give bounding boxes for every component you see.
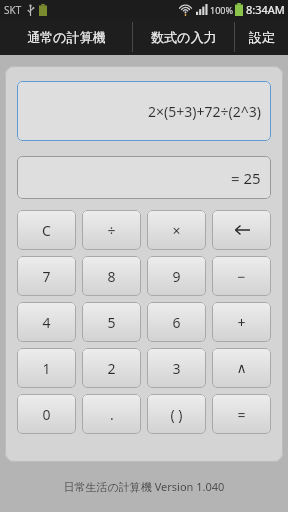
button[interactable]: . [82, 394, 141, 434]
button[interactable]: C [17, 210, 76, 250]
staticText: × [172, 221, 181, 240]
staticText: 2 [107, 359, 116, 378]
button[interactable]: 6 [147, 302, 206, 342]
button[interactable]: − [212, 256, 271, 296]
button[interactable]: 1 [17, 348, 76, 388]
staticText: 7 [42, 267, 51, 286]
button[interactable]: Backspace [212, 210, 271, 250]
button[interactable]: 0 [17, 394, 76, 434]
staticText: = 25 [231, 168, 261, 188]
button[interactable]: 9 [147, 256, 206, 296]
button[interactable]: 設定 [235, 19, 288, 55]
button[interactable]: = 25 [17, 156, 271, 199]
staticText: 2×(5+3)+72÷(2^3) [148, 102, 261, 121]
button[interactable]: 7 [17, 256, 76, 296]
button[interactable]: 5 [82, 302, 141, 342]
staticText: 通常の計算機 [27, 29, 106, 45]
staticText: 1 [42, 359, 51, 378]
staticText: = [237, 405, 246, 424]
staticText: 設定 [249, 29, 275, 45]
staticText: 6 [172, 313, 181, 332]
button[interactable]: ∧ [212, 348, 271, 388]
button[interactable]: 8 [82, 256, 141, 296]
staticText: − [237, 267, 246, 286]
staticText: 100% [210, 4, 233, 16]
staticText: 9 [172, 267, 181, 286]
button[interactable]: ÷ [82, 210, 141, 250]
staticText: ∧ [236, 360, 247, 376]
button[interactable]: 2 [82, 348, 141, 388]
button[interactable]: 通常の計算機 [0, 19, 132, 55]
staticText: C [42, 221, 51, 240]
staticText: 3 [172, 359, 181, 378]
button[interactable]: × [147, 210, 206, 250]
staticText: 0 [42, 405, 51, 424]
staticText: + [237, 313, 246, 332]
button[interactable]: ( ) [147, 394, 206, 434]
staticText: ÷ [107, 221, 116, 240]
button[interactable]: 4 [17, 302, 76, 342]
staticText: 8 [107, 267, 116, 286]
staticText: 日常生活の計算機 Version 1.040 [0, 479, 288, 494]
button[interactable]: 2×(5+3)+72÷(2^3) [17, 81, 271, 141]
staticText: ( ) [170, 405, 183, 424]
staticText: 5 [107, 313, 116, 332]
button[interactable]: 数式の入力 [133, 19, 234, 55]
staticText: 4 [42, 313, 51, 332]
button[interactable]: + [212, 302, 271, 342]
staticText: . [110, 405, 114, 424]
button[interactable]: = [212, 394, 271, 434]
staticText: SKT [4, 3, 22, 17]
button[interactable]: 3 [147, 348, 206, 388]
staticText: 数式の入力 [151, 29, 217, 45]
staticText: 8:34AM [246, 2, 285, 17]
